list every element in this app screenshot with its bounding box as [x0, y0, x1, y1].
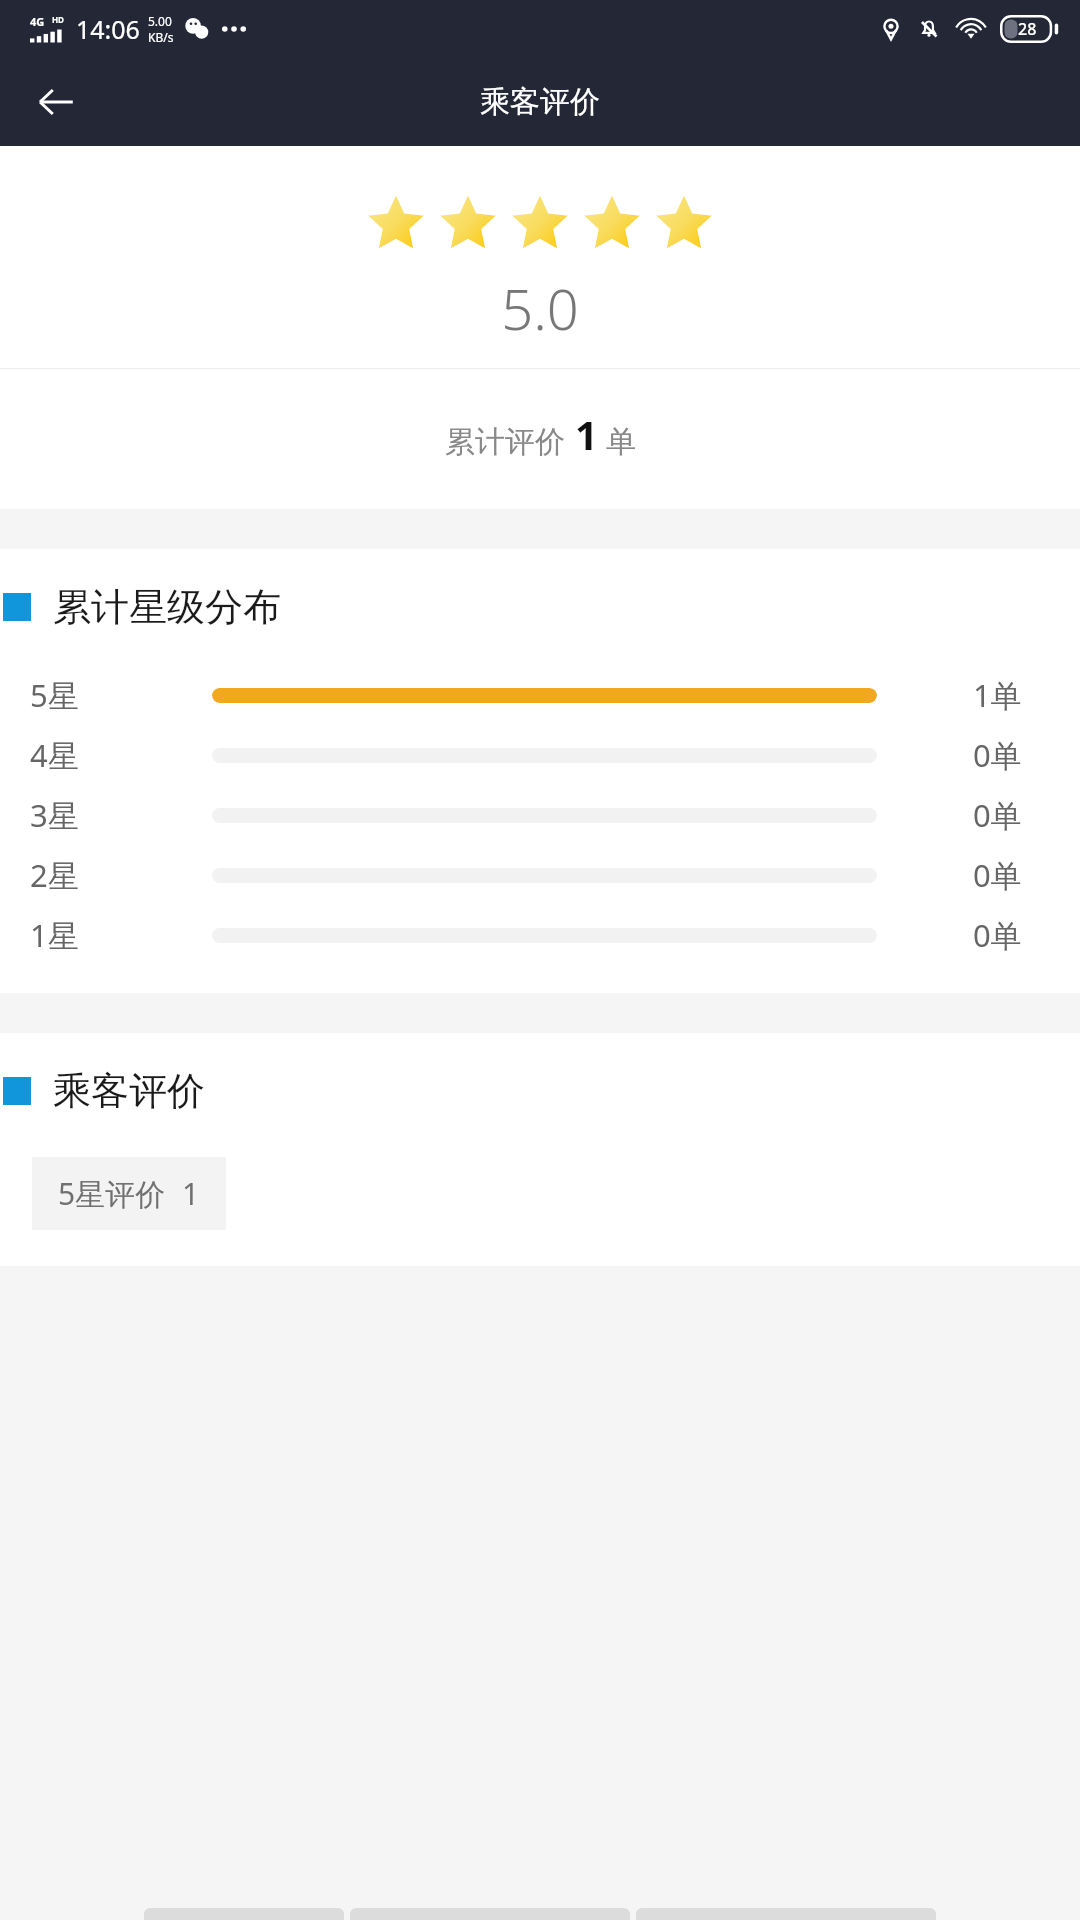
staticText: HD	[52, 14, 64, 25]
staticText: 2星	[30, 854, 79, 896]
staticText: 累计星级分布	[53, 583, 281, 631]
staticText: 乘客评价	[480, 83, 600, 121]
staticText: 1单	[973, 674, 1022, 716]
staticText: 3星	[30, 794, 79, 836]
staticText: 5星评价	[58, 1173, 166, 1214]
staticText: 28	[1018, 18, 1037, 40]
staticText: 0单	[973, 854, 1022, 896]
staticText: 累计评价	[445, 423, 565, 461]
button[interactable]: 1星	[0, 905, 1080, 965]
staticText: 5星	[30, 674, 79, 716]
button[interactable]: 5星评价	[32, 1157, 226, 1230]
button[interactable]: 4星	[0, 725, 1080, 785]
button[interactable]: 3星	[0, 785, 1080, 845]
staticText: 乘客评价	[53, 1067, 205, 1115]
button[interactable]: Back	[20, 66, 92, 138]
staticText: 14:06	[76, 12, 140, 46]
staticText: 单	[606, 423, 636, 461]
staticText: 4G	[30, 14, 45, 29]
staticText: 5.00	[148, 13, 172, 29]
staticText: 5.0	[0, 270, 1080, 346]
staticText: KB/s	[148, 29, 174, 45]
staticText: 1星	[30, 914, 79, 956]
staticText: 1	[575, 407, 598, 461]
staticText: 0单	[973, 734, 1022, 776]
button[interactable]: 5星	[0, 665, 1080, 725]
staticText: 4星	[30, 734, 79, 776]
button[interactable]: 2星	[0, 845, 1080, 905]
staticText: 1	[182, 1173, 200, 1214]
staticText: 0单	[973, 914, 1022, 956]
staticText: 0单	[973, 794, 1022, 836]
